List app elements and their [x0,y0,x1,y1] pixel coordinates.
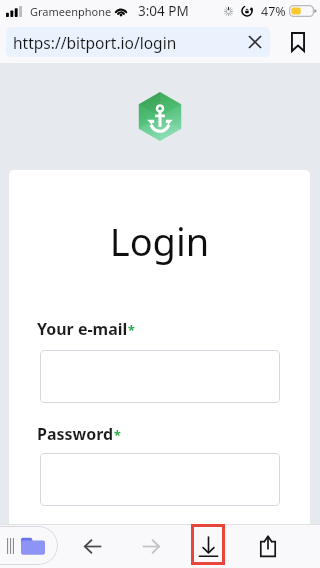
staticText: * [128,322,135,339]
staticText: https://bitport.io/login [13,32,234,53]
staticText: Login [9,215,310,267]
staticText: Grameenphone [30,4,112,19]
button[interactable]: Bookmarks [273,27,320,57]
staticText: 47% [261,3,286,20]
button[interactable] [40,453,280,506]
button[interactable]: Forward [131,524,171,568]
staticText: Your e-mail [37,318,128,340]
button[interactable] [40,350,280,403]
staticText: * [114,427,121,444]
button[interactable]: https://bitport.io/login [6,27,270,57]
button[interactable]: Clear address [237,27,270,57]
button[interactable]: Download [188,524,228,568]
button[interactable]: Tabs [0,526,58,565]
staticText: 3:04 PM [138,2,189,20]
button[interactable]: Share [248,524,288,568]
button[interactable]: Back [73,524,113,568]
staticText: Password [37,423,114,445]
